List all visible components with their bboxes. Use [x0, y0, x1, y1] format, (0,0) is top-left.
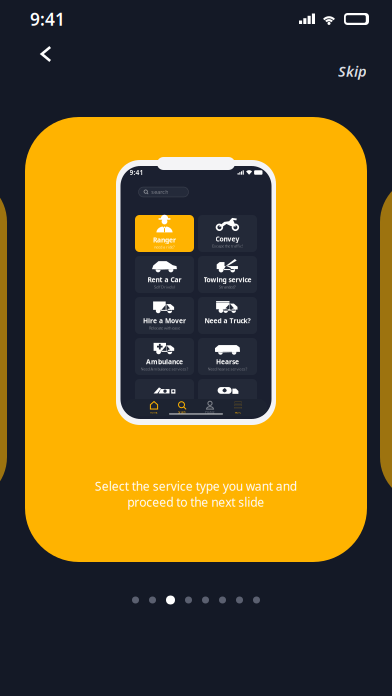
- staticText: Search: [178, 411, 186, 414]
- button[interactable]: Hire a Mover: [135, 297, 194, 334]
- staticText: Stranded?: [219, 284, 236, 289]
- button[interactable]: Hearse: [198, 338, 257, 375]
- button[interactable]: Home: [140, 400, 168, 415]
- button[interactable]: Search: [168, 400, 196, 415]
- staticText: need a ride?: [154, 244, 175, 250]
- staticText: proceed to the next slide: [127, 494, 264, 510]
- staticText: Self Drive(s): [154, 284, 175, 289]
- staticText: Hearse: [216, 357, 239, 366]
- staticText: Need Ambulance services?: [140, 366, 188, 371]
- staticText: Profile: [205, 411, 215, 414]
- button[interactable]: Back: [26, 34, 66, 68]
- staticText: More: [234, 411, 241, 414]
- button[interactable]: Convey: [198, 215, 257, 252]
- button[interactable]: Ambulance: [135, 338, 194, 375]
- button[interactable]: More: [224, 400, 252, 415]
- button[interactable]: [135, 379, 194, 416]
- staticText: Hire a Mover: [143, 316, 186, 325]
- staticText: Need a Truck?: [204, 316, 250, 325]
- button[interactable]: Skip: [329, 56, 376, 86]
- staticText: search: [151, 188, 168, 196]
- button[interactable]: Towing service: [198, 256, 257, 293]
- staticText: Convey: [215, 234, 239, 243]
- staticText: Rent a Car: [147, 275, 181, 284]
- button[interactable]: Rent a Car: [135, 256, 194, 293]
- staticText: Escape the traffic!: [212, 243, 243, 249]
- button[interactable]: [198, 379, 257, 416]
- staticText: 9:41: [129, 168, 143, 177]
- button[interactable]: Need a Truck?: [198, 297, 257, 334]
- staticText: Home: [150, 411, 158, 414]
- staticText: Relocate with ease: [149, 325, 180, 330]
- button[interactable]: Ranger: [135, 215, 194, 252]
- staticText: 9:41: [30, 7, 65, 30]
- staticText: Select the service type you want and: [95, 478, 297, 494]
- staticText: Ambulance: [146, 357, 183, 366]
- staticText: Towing service: [203, 275, 251, 284]
- button[interactable]: Profile: [196, 400, 224, 415]
- staticText: Need hearse services?: [207, 366, 247, 371]
- staticText: Skip: [338, 61, 367, 81]
- staticText: Ranger: [153, 235, 176, 244]
